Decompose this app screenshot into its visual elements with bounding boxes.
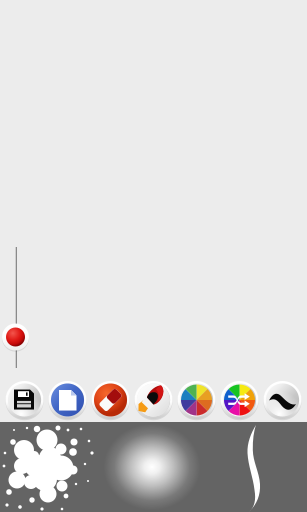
button[interactable]: Swap colors <box>220 381 258 419</box>
button[interactable]: Save <box>5 381 43 419</box>
button[interactable]: New document <box>48 381 86 419</box>
button[interactable]: Eraser <box>91 381 129 419</box>
button[interactable]: Brush <box>134 381 172 419</box>
button[interactable]: Stroke style <box>263 381 301 419</box>
button[interactable]: Brush size <box>2 323 29 350</box>
button[interactable]: Colors <box>177 381 215 419</box>
